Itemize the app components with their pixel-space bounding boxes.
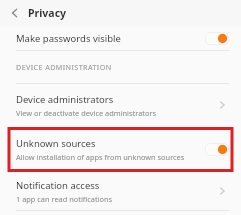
staticText: Notification access	[16, 179, 100, 192]
button[interactable]: Toggle, on	[205, 32, 229, 45]
staticText: Allow installation of apps from unknown …	[16, 152, 185, 162]
staticText: Unknown sources	[16, 137, 96, 150]
button[interactable]: Device administrators	[0, 84, 241, 126]
staticText: Make passwords visible	[16, 32, 205, 45]
button[interactable]: Toggle, on	[205, 143, 229, 156]
staticText: Privacy	[28, 6, 67, 20]
staticText: DEVICE ADMINISTRATION	[16, 62, 112, 72]
staticText: View or deactivate device administrators	[16, 108, 157, 118]
button[interactable]: Notification access	[0, 172, 241, 210]
other: Open	[215, 98, 229, 112]
button[interactable]: Unknown sources	[0, 126, 241, 172]
other: Open	[215, 184, 229, 198]
staticText: Device administrators	[16, 93, 114, 106]
button[interactable]: Make passwords visible	[0, 26, 241, 50]
staticText: 1 app can read notifications	[16, 194, 113, 204]
button[interactable]: Back	[4, 2, 26, 24]
